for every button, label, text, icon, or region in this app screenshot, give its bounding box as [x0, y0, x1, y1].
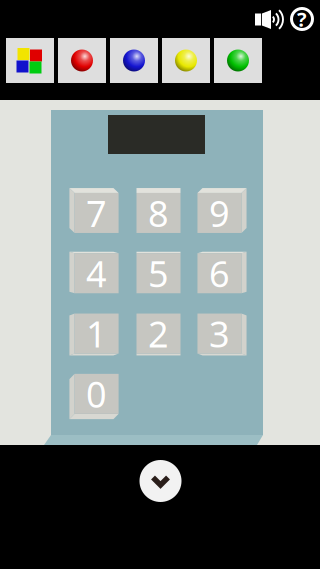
button[interactable]: Key 5: [136, 252, 180, 293]
button[interactable]: Green: [214, 38, 262, 83]
button[interactable]: Key 1: [69, 314, 119, 355]
staticText: 5: [148, 249, 169, 297]
button[interactable]: Yellow: [162, 38, 210, 83]
staticText: 0: [86, 370, 107, 418]
button[interactable]: Key 6: [197, 252, 247, 293]
button[interactable]: Blue: [110, 38, 158, 83]
staticText: 8: [148, 189, 169, 237]
staticText: 7: [86, 189, 107, 237]
button[interactable]: Red: [58, 38, 106, 83]
button[interactable]: Collapse: [139, 460, 181, 502]
button[interactable]: Key 9: [197, 188, 247, 233]
button[interactable]: Colors: [6, 38, 54, 83]
staticText: 9: [209, 189, 230, 237]
button[interactable]: Key 8: [136, 188, 180, 233]
button[interactable]: Key 4: [69, 252, 119, 293]
button[interactable]: Key 0: [69, 374, 119, 419]
staticText: 6: [209, 249, 230, 297]
staticText: 2: [148, 310, 169, 357]
staticText: 4: [86, 249, 107, 297]
button[interactable]: Help: [289, 6, 315, 32]
button[interactable]: Key 3: [197, 314, 247, 355]
button[interactable]: Key 7: [69, 188, 119, 233]
button[interactable]: Sound: [255, 7, 285, 31]
staticText: 3: [209, 310, 230, 357]
button[interactable]: Key 2: [136, 314, 180, 355]
staticText: ?: [297, 6, 307, 32]
staticText: 1: [86, 310, 107, 357]
